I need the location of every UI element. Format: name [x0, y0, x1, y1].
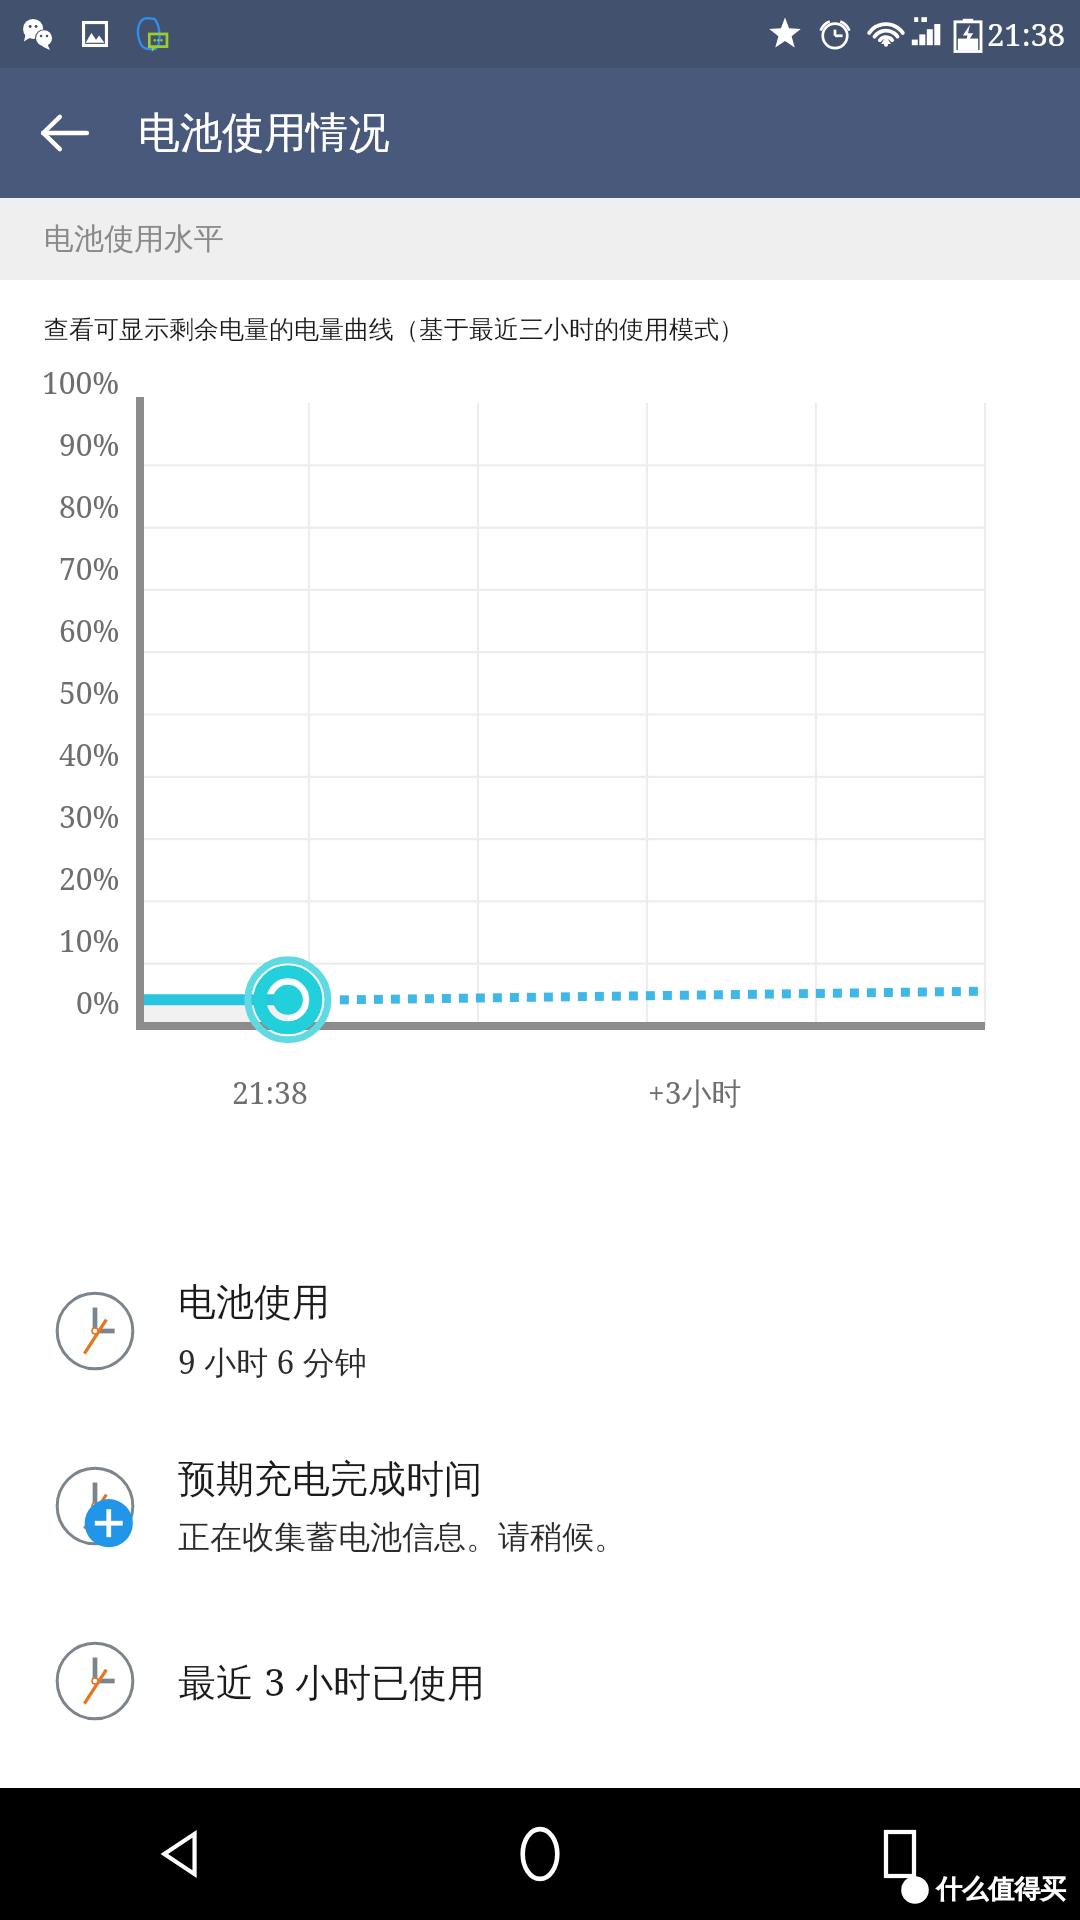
staticText: 电池使用水平 [44, 220, 224, 258]
staticText: 预期充电完成时间 [178, 1455, 482, 1503]
staticText: +3小时 [648, 1072, 742, 1113]
staticText: 20% [59, 858, 120, 899]
staticText: 什么值得买 [936, 1873, 1066, 1906]
staticText: 10% [59, 920, 120, 961]
staticText: 30% [59, 796, 120, 837]
staticText: 0% [76, 982, 120, 1023]
staticText: 21:38 [987, 13, 1066, 55]
button[interactable]: 电池使用 [0, 1243, 1080, 1418]
staticText: 9 小时 6 分钟 [178, 1340, 367, 1384]
button[interactable]: 预期充电完成时间 [0, 1418, 1080, 1593]
button[interactable]: 最近使用的应用 [720, 1788, 1080, 1920]
staticText: 50% [59, 672, 120, 713]
staticText: 100% [42, 362, 120, 403]
staticText: 正在收集蓄电池信息。请稍候。 [178, 1517, 626, 1557]
button[interactable]: 最近 3 小时已使用 [0, 1593, 1080, 1768]
staticText: 60% [59, 610, 120, 651]
staticText: 70% [59, 548, 120, 589]
button[interactable]: 主屏幕 [360, 1788, 720, 1920]
staticText: 21:38 [232, 1072, 308, 1113]
button[interactable]: 返回 [34, 103, 94, 163]
staticText: 40% [59, 734, 120, 775]
button[interactable]: 返回 [0, 1788, 360, 1920]
staticText: 最近 3 小时已使用 [178, 1655, 486, 1707]
staticText: 电池使用情况 [138, 107, 390, 160]
staticText: 查看可显示剩余电量的电量曲线（基于最近三小时的使用模式） [44, 314, 744, 345]
staticText: 90% [59, 424, 120, 465]
staticText: 80% [59, 486, 120, 527]
staticText: 电池使用 [178, 1278, 330, 1326]
